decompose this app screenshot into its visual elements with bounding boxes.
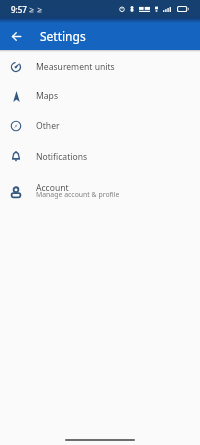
staticText: Account <box>36 182 69 194</box>
button[interactable]: Other <box>0 111 200 141</box>
button[interactable]: Measurement units <box>0 52 200 81</box>
staticText: 9:57 <box>11 4 27 15</box>
button[interactable]: Back <box>0 23 32 50</box>
staticText: Maps <box>36 90 59 102</box>
staticText: Notifications <box>36 151 88 163</box>
staticText: Settings <box>40 28 86 44</box>
button[interactable]: Notifications <box>0 141 200 172</box>
button[interactable]: Maps <box>0 81 200 111</box>
staticText: Measurement units <box>36 61 115 73</box>
button[interactable]: Account <box>0 172 200 213</box>
staticText: Other <box>36 120 60 132</box>
staticText: Manage account & profile <box>36 190 120 199</box>
